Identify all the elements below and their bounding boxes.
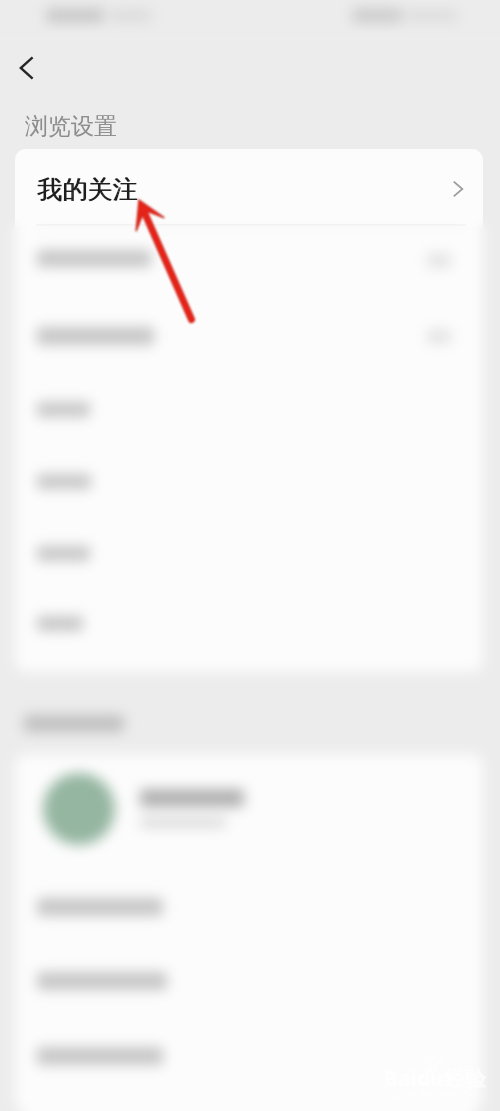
- button[interactable]: 通用: [15, 524, 483, 594]
- staticText: 我的关注: [37, 174, 137, 205]
- button[interactable]: 青少年模式: [15, 380, 483, 452]
- staticText: 我的关注: [38, 174, 138, 205]
- button[interactable]: Profile: [15, 754, 483, 870]
- button[interactable]: 隐私设置: [15, 452, 483, 524]
- button[interactable]: Back: [4, 46, 48, 90]
- staticText: 我的关注: [37, 174, 137, 205]
- button[interactable]: 我的收藏夹: [15, 944, 483, 1018]
- staticText: 我的关注: [38, 174, 138, 205]
- button[interactable]: 我的关注: [15, 149, 483, 229]
- staticText: 浏览设置: [25, 112, 117, 141]
- staticText: 浏览设置: [25, 112, 117, 141]
- button[interactable]: 收藏设置: [15, 229, 483, 307]
- button[interactable]: 关于: [15, 594, 483, 672]
- button[interactable]: 我的下载: [15, 1018, 483, 1092]
- button[interactable]: 历史记录设置: [15, 307, 483, 380]
- button[interactable]: 我的消息: [15, 870, 483, 944]
